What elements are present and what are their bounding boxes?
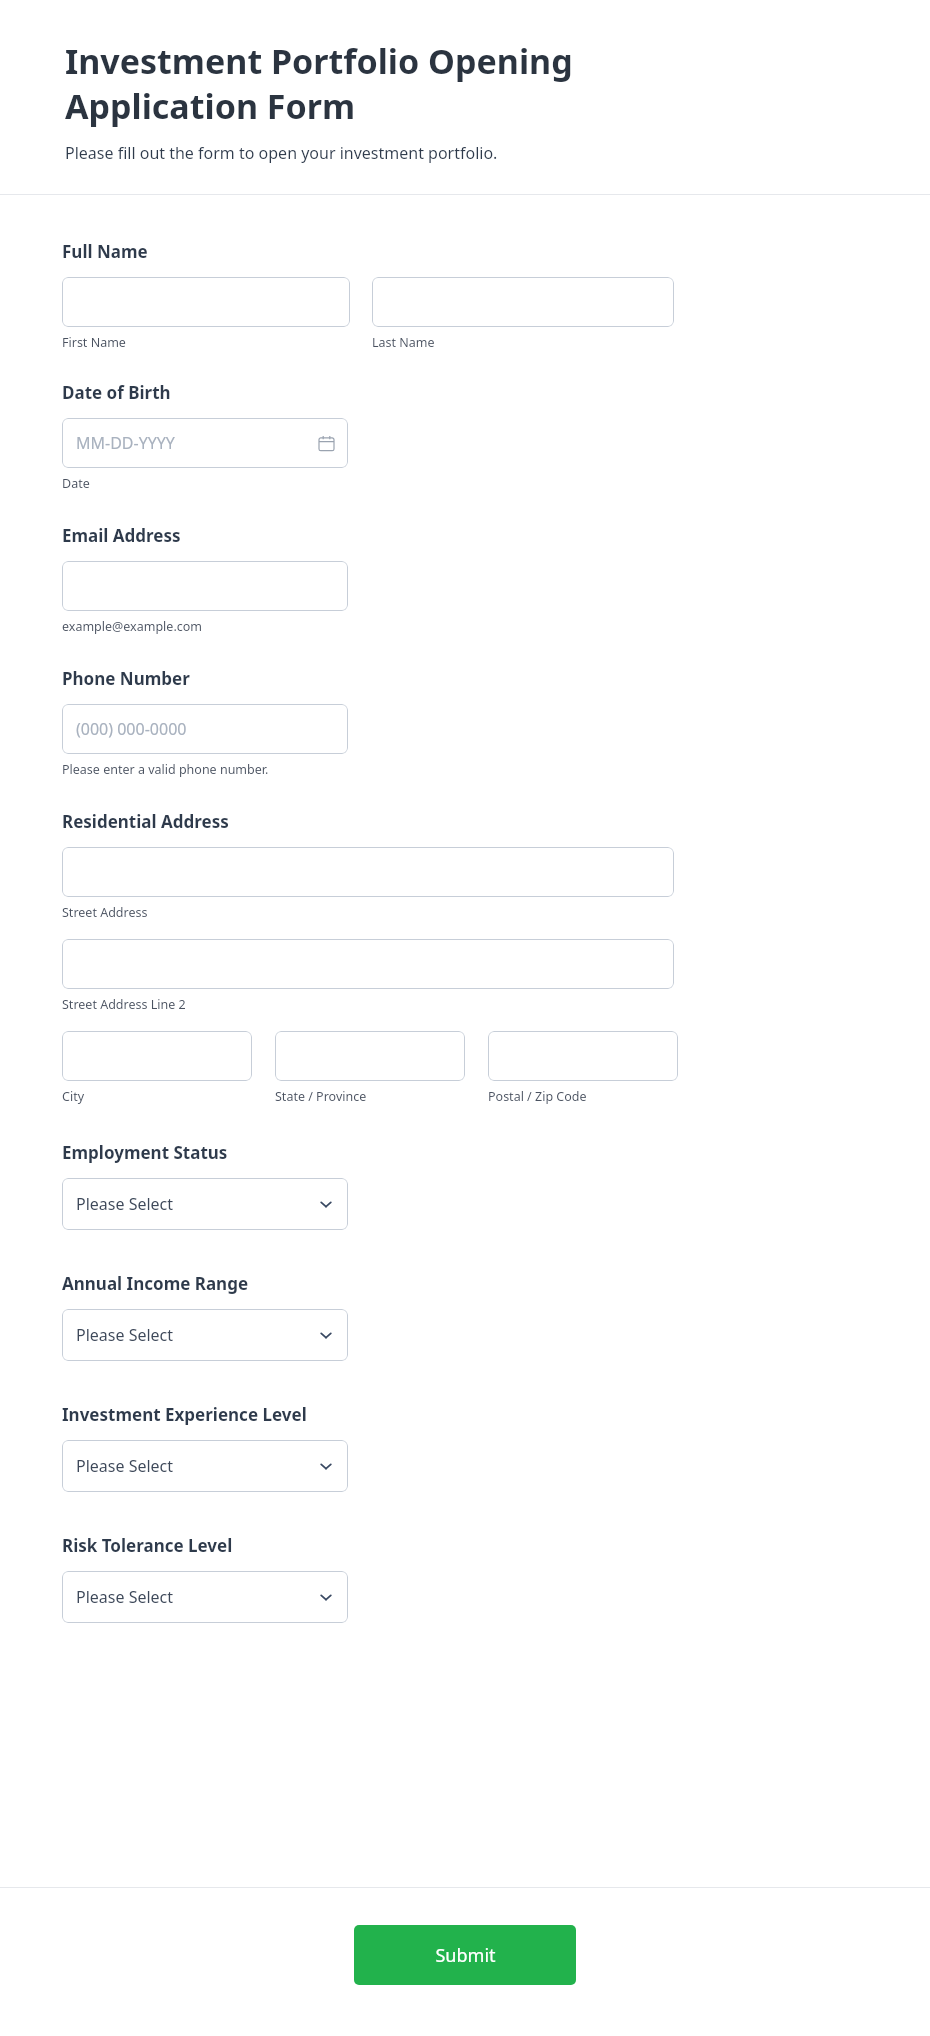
- button[interactable]: Please Select: [62, 1178, 348, 1230]
- button[interactable]: [372, 277, 674, 327]
- other: Pick date: [319, 436, 334, 451]
- staticText: City: [62, 1088, 85, 1105]
- button[interactable]: [488, 1031, 678, 1081]
- button[interactable]: [62, 1031, 252, 1081]
- staticText: Employment Status: [62, 1141, 228, 1164]
- staticText: Please Select: [76, 1586, 318, 1608]
- other: Expand: [318, 1589, 334, 1605]
- staticText: Please enter a valid phone number.: [62, 761, 269, 778]
- staticText: Street Address: [62, 904, 148, 921]
- button[interactable]: Please Select: [62, 1571, 348, 1623]
- staticText: State / Province: [275, 1088, 367, 1105]
- staticText: Phone Number: [62, 667, 190, 690]
- button[interactable]: [62, 847, 674, 897]
- staticText: Street Address Line 2: [62, 996, 186, 1013]
- staticText: MM-DD-YYYY: [76, 432, 319, 454]
- staticText: Email Address: [62, 524, 181, 547]
- button[interactable]: Please Select: [62, 1309, 348, 1361]
- staticText: Date: [62, 475, 90, 492]
- staticText: First Name: [62, 334, 126, 351]
- staticText: Date of Birth: [62, 381, 171, 404]
- other: Expand: [318, 1196, 334, 1212]
- button[interactable]: [62, 561, 348, 611]
- other: Expand: [318, 1327, 334, 1343]
- staticText: (000) 000-0000: [76, 718, 334, 740]
- staticText: Investment Portfolio Opening Application…: [65, 38, 705, 129]
- button[interactable]: [62, 939, 674, 989]
- staticText: Please fill out the form to open your in…: [65, 142, 498, 164]
- other: Expand: [318, 1458, 334, 1474]
- staticText: Annual Income Range: [62, 1272, 249, 1295]
- staticText: Last Name: [372, 334, 435, 351]
- button[interactable]: MM-DD-YYYY: [62, 418, 348, 468]
- staticText: Please Select: [76, 1455, 318, 1477]
- staticText: Risk Tolerance Level: [62, 1534, 233, 1557]
- button[interactable]: Submit: [354, 1925, 576, 1985]
- staticText: Submit: [435, 1943, 496, 1968]
- button[interactable]: [62, 277, 350, 327]
- button[interactable]: [275, 1031, 465, 1081]
- staticText: Please Select: [76, 1324, 318, 1346]
- button[interactable]: Please Select: [62, 1440, 348, 1492]
- staticText: Please Select: [76, 1193, 318, 1215]
- button[interactable]: (000) 000-0000: [62, 704, 348, 754]
- staticText: Investment Experience Level: [62, 1403, 307, 1426]
- staticText: Full Name: [62, 240, 148, 263]
- staticText: example@example.com: [62, 618, 202, 635]
- staticText: Postal / Zip Code: [488, 1088, 587, 1105]
- staticText: Residential Address: [62, 810, 229, 833]
